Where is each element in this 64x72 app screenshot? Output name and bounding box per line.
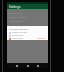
- button[interactable]: Applications: [9, 18, 48, 22]
- staticText: Notifications: [9, 11, 24, 14]
- button[interactable]: DELETE: [37, 36, 46, 39]
- staticText: Settings: [9, 5, 21, 9]
- staticText: DELETE: [37, 36, 46, 39]
- button[interactable]: Settings: [7, 4, 48, 9]
- button[interactable]: Silent tone: [9, 34, 48, 37]
- staticText: Applications: [9, 19, 23, 22]
- staticText: Silent tone: [12, 34, 24, 37]
- button[interactable]: Sound & display: [9, 14, 48, 18]
- button[interactable]: Default sound: [9, 31, 48, 34]
- staticText: Default sound: [12, 31, 28, 34]
- staticText: Alarm bell: [12, 37, 23, 40]
- staticText: Sound & display: [9, 15, 28, 18]
- button[interactable]: Alarm bell: [9, 37, 48, 40]
- staticText: Choose ringtone: [9, 27, 28, 30]
- button[interactable]: Notifications: [9, 10, 48, 14]
